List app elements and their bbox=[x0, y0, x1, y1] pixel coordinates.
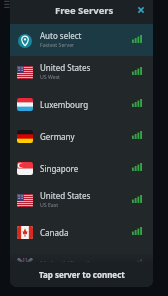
staticText: Tap server to connect bbox=[39, 269, 125, 280]
button[interactable]: Luxembourg bbox=[10, 88, 153, 120]
button[interactable]: Canada bbox=[10, 216, 153, 248]
staticText: Germany bbox=[40, 131, 75, 142]
staticText: US West bbox=[40, 73, 60, 80]
button[interactable]: Tap server to connect bbox=[10, 262, 153, 287]
button[interactable]: United States bbox=[10, 56, 153, 88]
staticText: Free Servers bbox=[55, 4, 114, 17]
staticText: Singapore bbox=[40, 163, 79, 174]
button[interactable]: Auto select bbox=[10, 24, 153, 56]
button[interactable]: United Kingdom bbox=[10, 248, 153, 280]
staticText: Luxembourg bbox=[40, 99, 89, 110]
button[interactable]: Singapore bbox=[10, 152, 153, 184]
staticText: Auto select bbox=[40, 30, 82, 41]
button[interactable]: Germany bbox=[10, 120, 153, 152]
staticText: United States bbox=[40, 62, 91, 73]
staticText: US East bbox=[40, 201, 59, 208]
button[interactable]: Close bbox=[134, 3, 148, 17]
button[interactable]: United States bbox=[10, 184, 153, 216]
staticText: Canada bbox=[40, 227, 69, 238]
staticText: United States bbox=[40, 190, 91, 201]
staticText: United Kingdom bbox=[40, 259, 102, 270]
staticText: Fastest Server bbox=[40, 41, 75, 48]
